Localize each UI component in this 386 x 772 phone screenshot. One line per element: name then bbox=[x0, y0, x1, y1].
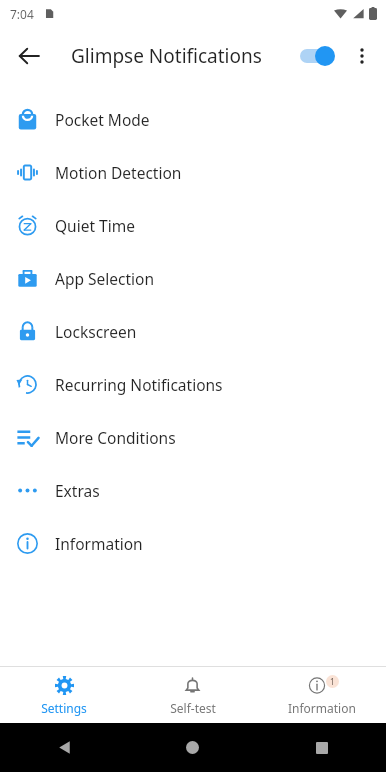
button[interactable]: Pocket Mode bbox=[0, 93, 386, 146]
button[interactable]: Motion Detection bbox=[0, 146, 386, 199]
button[interactable]: Back bbox=[6, 33, 52, 79]
staticText: Settings bbox=[41, 700, 87, 716]
staticText: Extras bbox=[55, 480, 100, 501]
button[interactable]: Home bbox=[128, 723, 257, 772]
staticText: Recurring Notifications bbox=[55, 374, 223, 395]
staticText: Motion Detection bbox=[55, 162, 182, 183]
button[interactable]: Lockscreen bbox=[0, 305, 386, 358]
button[interactable]: Settings bbox=[0, 667, 128, 723]
staticText: App Selection bbox=[55, 268, 154, 289]
staticText: Self-test bbox=[170, 700, 216, 716]
button[interactable]: Quiet Time bbox=[0, 199, 386, 252]
button[interactable]: More Conditions bbox=[0, 411, 386, 464]
staticText: Lockscreen bbox=[55, 321, 137, 342]
button[interactable]: Recurring Notifications bbox=[0, 358, 386, 411]
button[interactable]: Extras bbox=[0, 464, 386, 517]
staticText: Information bbox=[55, 533, 143, 554]
staticText: Quiet Time bbox=[55, 215, 135, 236]
button[interactable]: Information bbox=[0, 517, 386, 570]
button[interactable]: App Selection bbox=[0, 252, 386, 305]
staticText: Information bbox=[288, 700, 356, 716]
button[interactable]: More options bbox=[340, 34, 384, 78]
button[interactable]: Self-test bbox=[128, 667, 257, 723]
button[interactable]: Enable Glimpse Notifications bbox=[293, 38, 341, 74]
staticText: Pocket Mode bbox=[55, 109, 150, 130]
staticText: 1 bbox=[330, 676, 335, 687]
staticText: 7:04 bbox=[10, 6, 34, 22]
button[interactable]: Recent apps bbox=[257, 723, 386, 772]
staticText: More Conditions bbox=[55, 427, 176, 448]
button[interactable]: Back bbox=[0, 723, 128, 772]
staticText: Glimpse Notifications bbox=[71, 43, 262, 69]
button[interactable]: 1 bbox=[257, 667, 386, 723]
